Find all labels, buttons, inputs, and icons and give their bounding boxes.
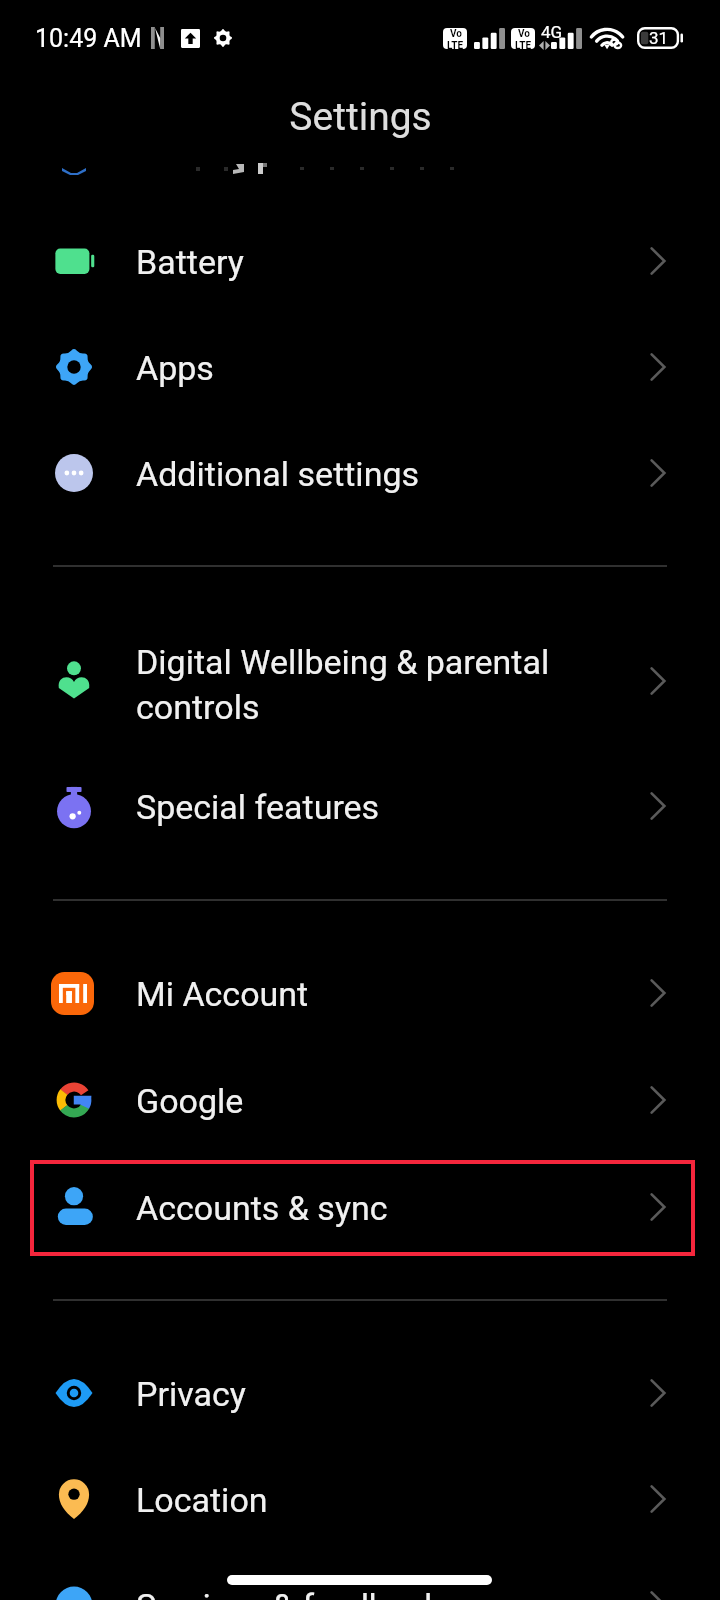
other: Netflix notification <box>151 27 164 49</box>
button[interactable]: Services & feedback <box>0 1552 720 1600</box>
other: Open Apps <box>650 353 666 381</box>
staticText: Settings <box>289 94 432 140</box>
staticText: Battery <box>136 242 616 282</box>
staticText: Vo <box>450 28 462 40</box>
staticText: Mi Account <box>136 974 616 1014</box>
staticText: Accounts & sync <box>136 1188 616 1228</box>
other: Open Google <box>650 1086 666 1114</box>
button[interactable]: Special features <box>0 753 720 859</box>
button[interactable]: Apps <box>0 314 720 420</box>
staticText: Privacy <box>136 1374 616 1414</box>
other: Open Additional settings <box>650 459 666 487</box>
staticText: Additional settings <box>136 454 616 494</box>
other: Settings notification <box>213 28 233 48</box>
button[interactable]: Location <box>0 1446 720 1552</box>
button[interactable]: Google <box>0 1046 720 1153</box>
other: Wi-Fi connected <box>592 26 624 50</box>
staticText: 4G <box>541 22 563 42</box>
staticText: Special features <box>136 787 616 827</box>
other: Open Services & feedback <box>650 1591 666 1600</box>
other: Open Digital Wellbeing & parental contro… <box>650 667 666 695</box>
other: Battery 31 percent <box>637 27 683 49</box>
other: Open Privacy <box>650 1379 666 1407</box>
staticText: Vo <box>518 28 530 40</box>
other: Open Location <box>650 1485 666 1513</box>
button[interactable]: Additional settings <box>0 420 720 526</box>
staticText: LTE <box>515 40 532 49</box>
staticText: Services & feedback <box>136 1586 616 1600</box>
button[interactable]: Digital Wellbeing & parental controls <box>0 608 720 753</box>
staticText: Apps <box>136 348 616 388</box>
staticText: Google <box>136 1081 616 1121</box>
staticText: Digital Wellbeing & parental controls <box>136 642 616 727</box>
other: Upload in progress <box>181 29 200 48</box>
button[interactable]: Privacy <box>0 1340 720 1446</box>
staticText: 10:49 AM <box>35 24 142 53</box>
other: Open Accounts & sync <box>650 1193 666 1221</box>
button[interactable]: Battery <box>0 208 720 314</box>
button[interactable]: Accounts & sync <box>0 1153 720 1260</box>
staticText: LTE <box>447 40 464 49</box>
staticText: 31 <box>649 28 669 48</box>
other: Open Special features <box>650 792 666 820</box>
staticText: Location <box>136 1480 616 1520</box>
button[interactable]: Mi Account <box>0 940 720 1046</box>
other: Open Mi Account <box>650 979 666 1007</box>
other: Open Battery <box>650 247 666 275</box>
